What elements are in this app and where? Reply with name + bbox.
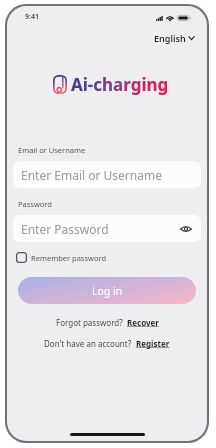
staticText: Enter Password bbox=[21, 221, 109, 237]
staticText: Password bbox=[18, 199, 52, 209]
staticText: Forgot password? bbox=[56, 317, 123, 328]
button[interactable]: Recover bbox=[127, 317, 159, 328]
staticText: Ai-charging bbox=[71, 73, 169, 96]
staticText: Remember password bbox=[31, 253, 107, 263]
button[interactable]: Register bbox=[136, 338, 170, 349]
button[interactable]: Enter Password bbox=[13, 215, 201, 242]
button[interactable]: Log in bbox=[18, 277, 196, 304]
staticText: English bbox=[154, 32, 186, 44]
staticText: Enter Email or Username bbox=[21, 167, 162, 183]
button[interactable]: Remember password bbox=[13, 251, 108, 264]
button[interactable]: Show password bbox=[179, 222, 193, 236]
staticText: Log in bbox=[92, 284, 123, 298]
staticText: 9:41 bbox=[25, 12, 39, 22]
staticText: Don't have an account? bbox=[44, 338, 132, 349]
button[interactable]: Enter Email or Username bbox=[13, 161, 201, 188]
button[interactable]: English bbox=[152, 30, 197, 46]
staticText: Email or Username bbox=[18, 145, 86, 155]
